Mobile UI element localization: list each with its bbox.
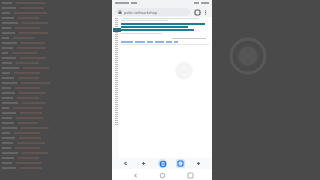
button[interactable]: Recent apps xyxy=(185,170,195,180)
button[interactable]: More options xyxy=(201,8,209,16)
button[interactable]: pokit.net/workshop xyxy=(115,8,190,16)
button[interactable]: Tabs xyxy=(176,159,185,168)
button[interactable]: Back xyxy=(130,170,140,180)
button[interactable]: Back xyxy=(121,159,130,168)
button[interactable]: Share xyxy=(193,8,201,16)
button[interactable]: New tab xyxy=(139,159,148,168)
button[interactable]: Home xyxy=(158,159,167,168)
button[interactable]: Home xyxy=(157,170,167,180)
button[interactable]: Add xyxy=(194,159,203,168)
staticText: pokit.net/workshop xyxy=(124,10,158,15)
